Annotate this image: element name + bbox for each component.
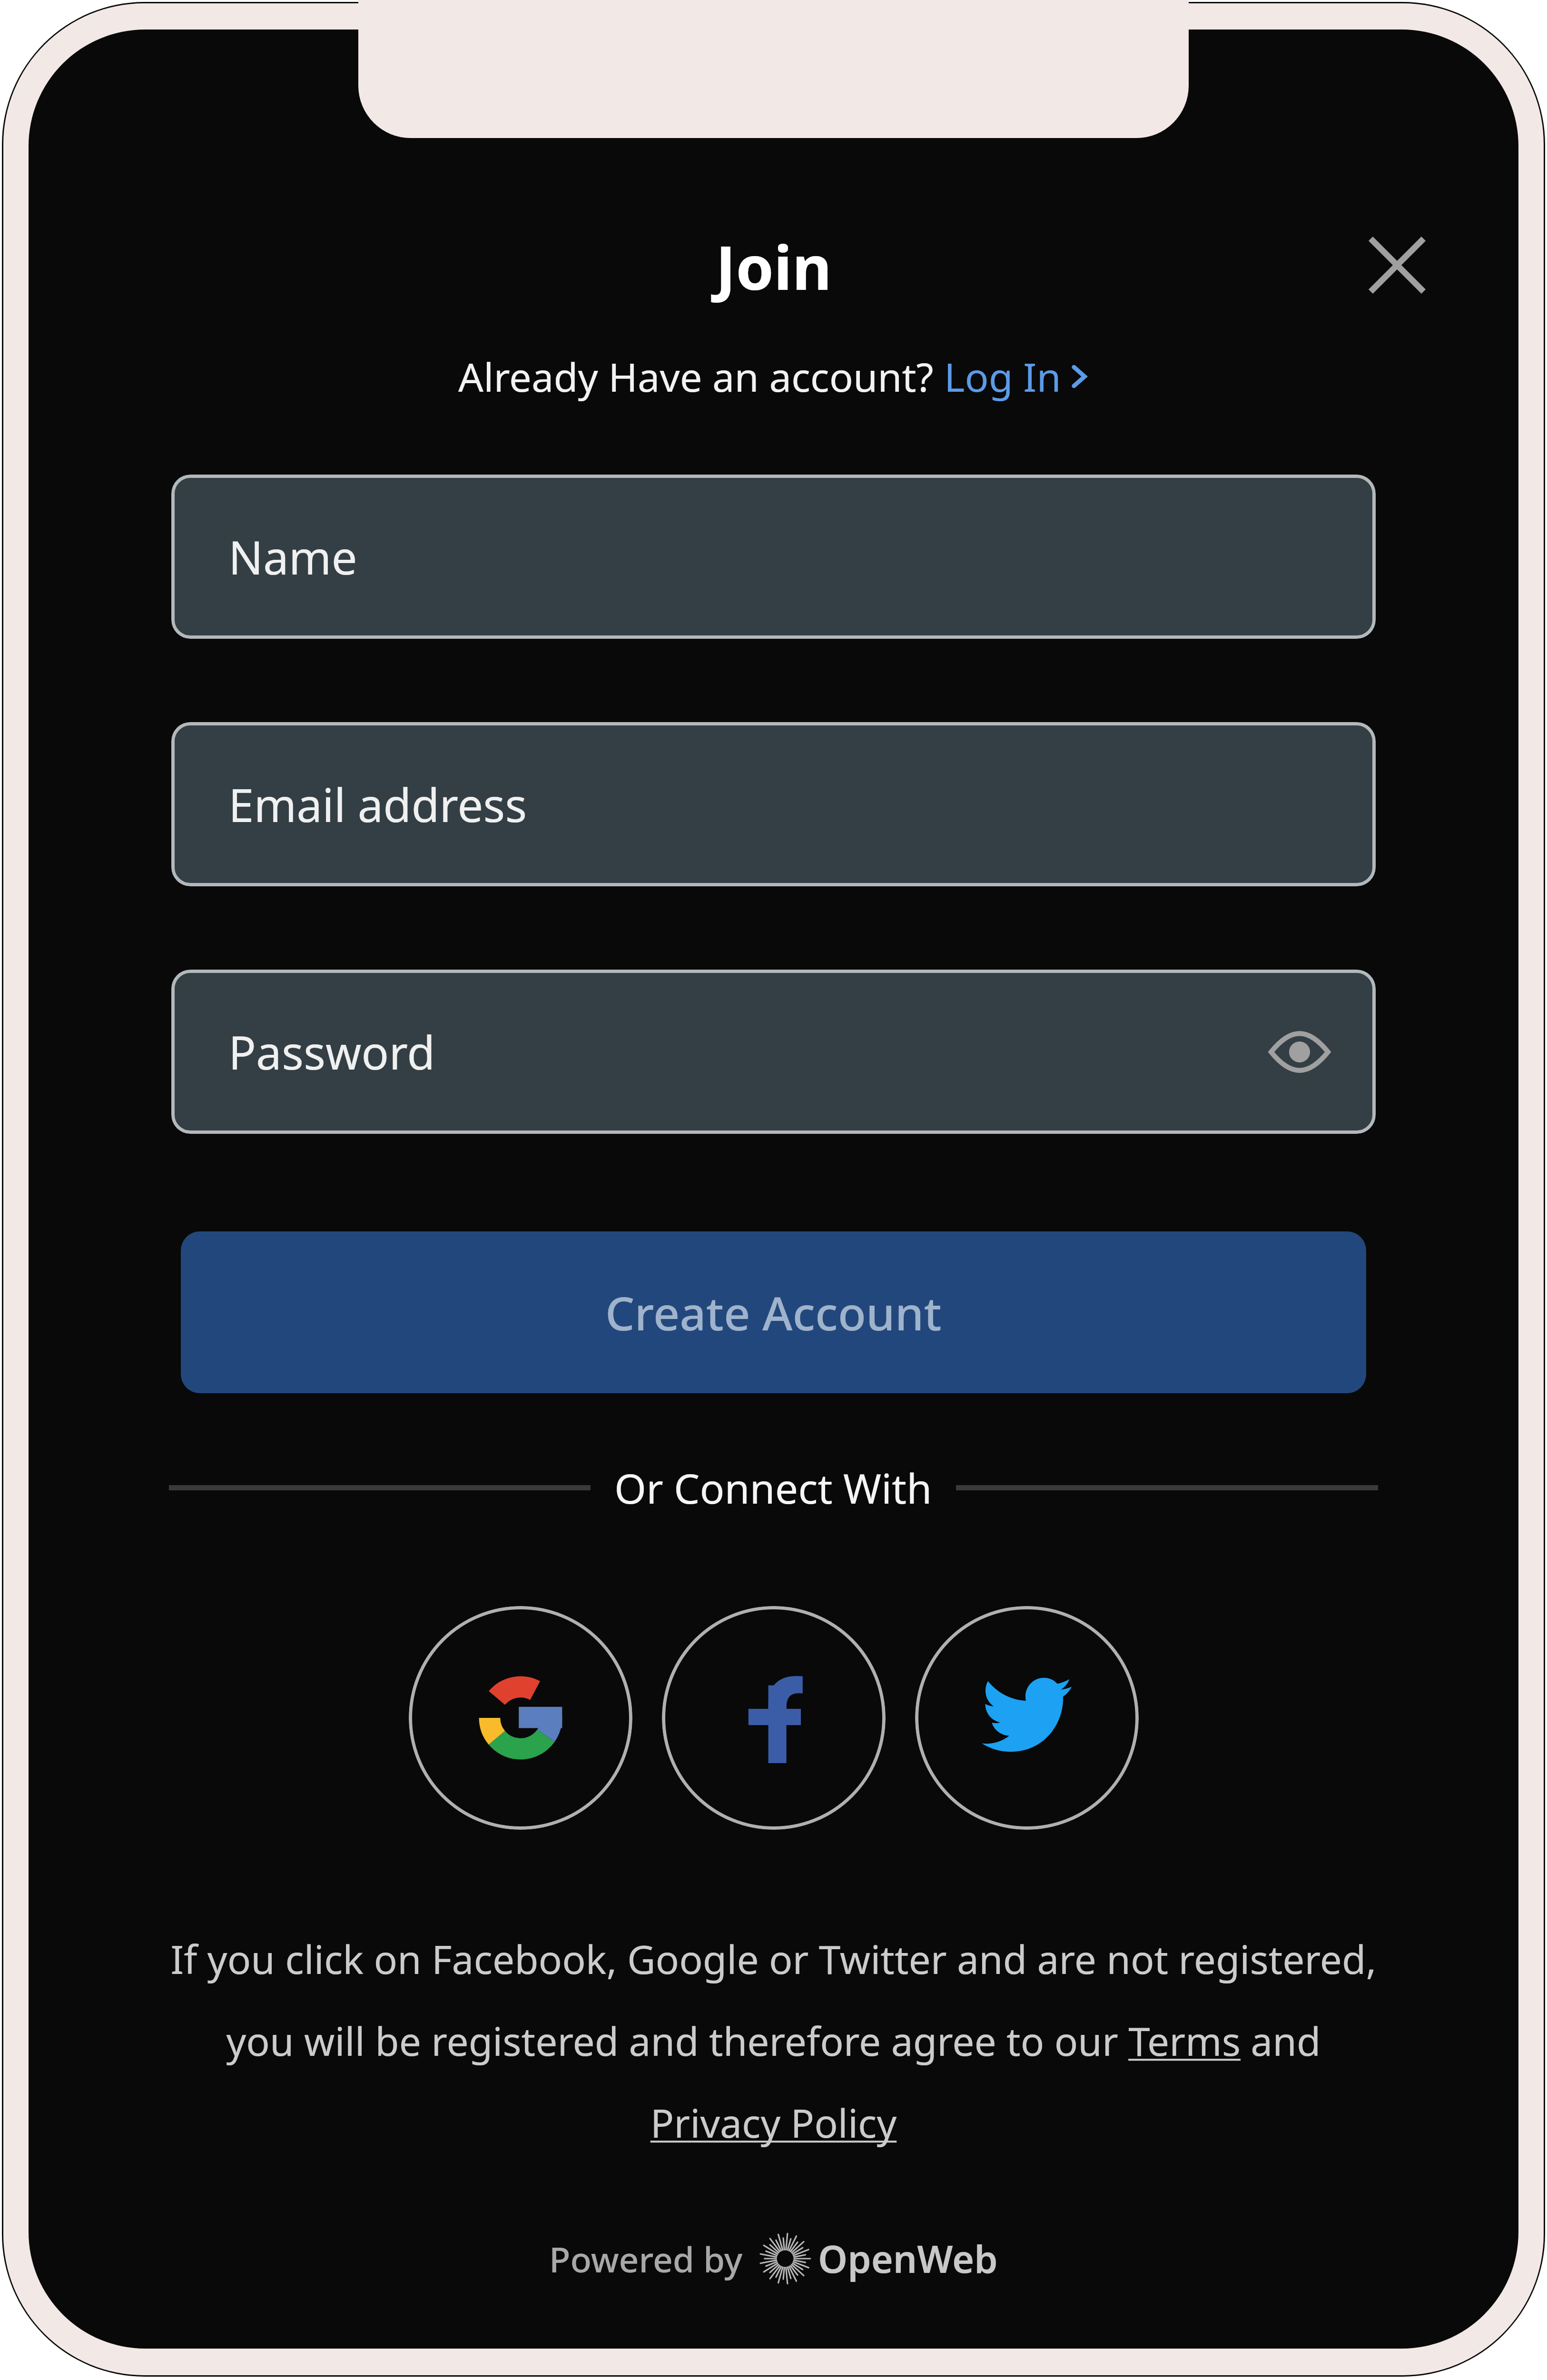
staticText: Name (228, 526, 357, 588)
staticText: Powered by (549, 2235, 743, 2282)
button[interactable]: Close (1323, 191, 1471, 339)
button[interactable]: Sign up with Facebook (662, 1606, 886, 1830)
staticText: If you click on Facebook, Google or Twit… (167, 1932, 1380, 2149)
staticText: Create Account (605, 1281, 942, 1344)
button[interactable]: Password (171, 970, 1376, 1134)
button[interactable]: Sign up with Google (409, 1606, 632, 1830)
staticText: Log In (944, 349, 1061, 403)
staticText: Password (228, 1021, 435, 1083)
staticText: Email address (228, 773, 527, 835)
staticText: Already Have an account? (458, 349, 944, 403)
button[interactable]: Name (171, 475, 1376, 639)
staticText: Join (716, 225, 832, 307)
staticText: OpenWeb (818, 2233, 998, 2284)
button[interactable]: Sign up with Twitter (915, 1606, 1139, 1830)
button[interactable]: Powered by (549, 2232, 998, 2285)
button[interactable]: Create Account (181, 1231, 1366, 1393)
button[interactable]: Email address (171, 722, 1376, 886)
staticText: Or Connect With (614, 1460, 932, 1516)
button[interactable]: Already Have an account? (458, 349, 1089, 403)
button[interactable]: Show password (1252, 1004, 1347, 1100)
